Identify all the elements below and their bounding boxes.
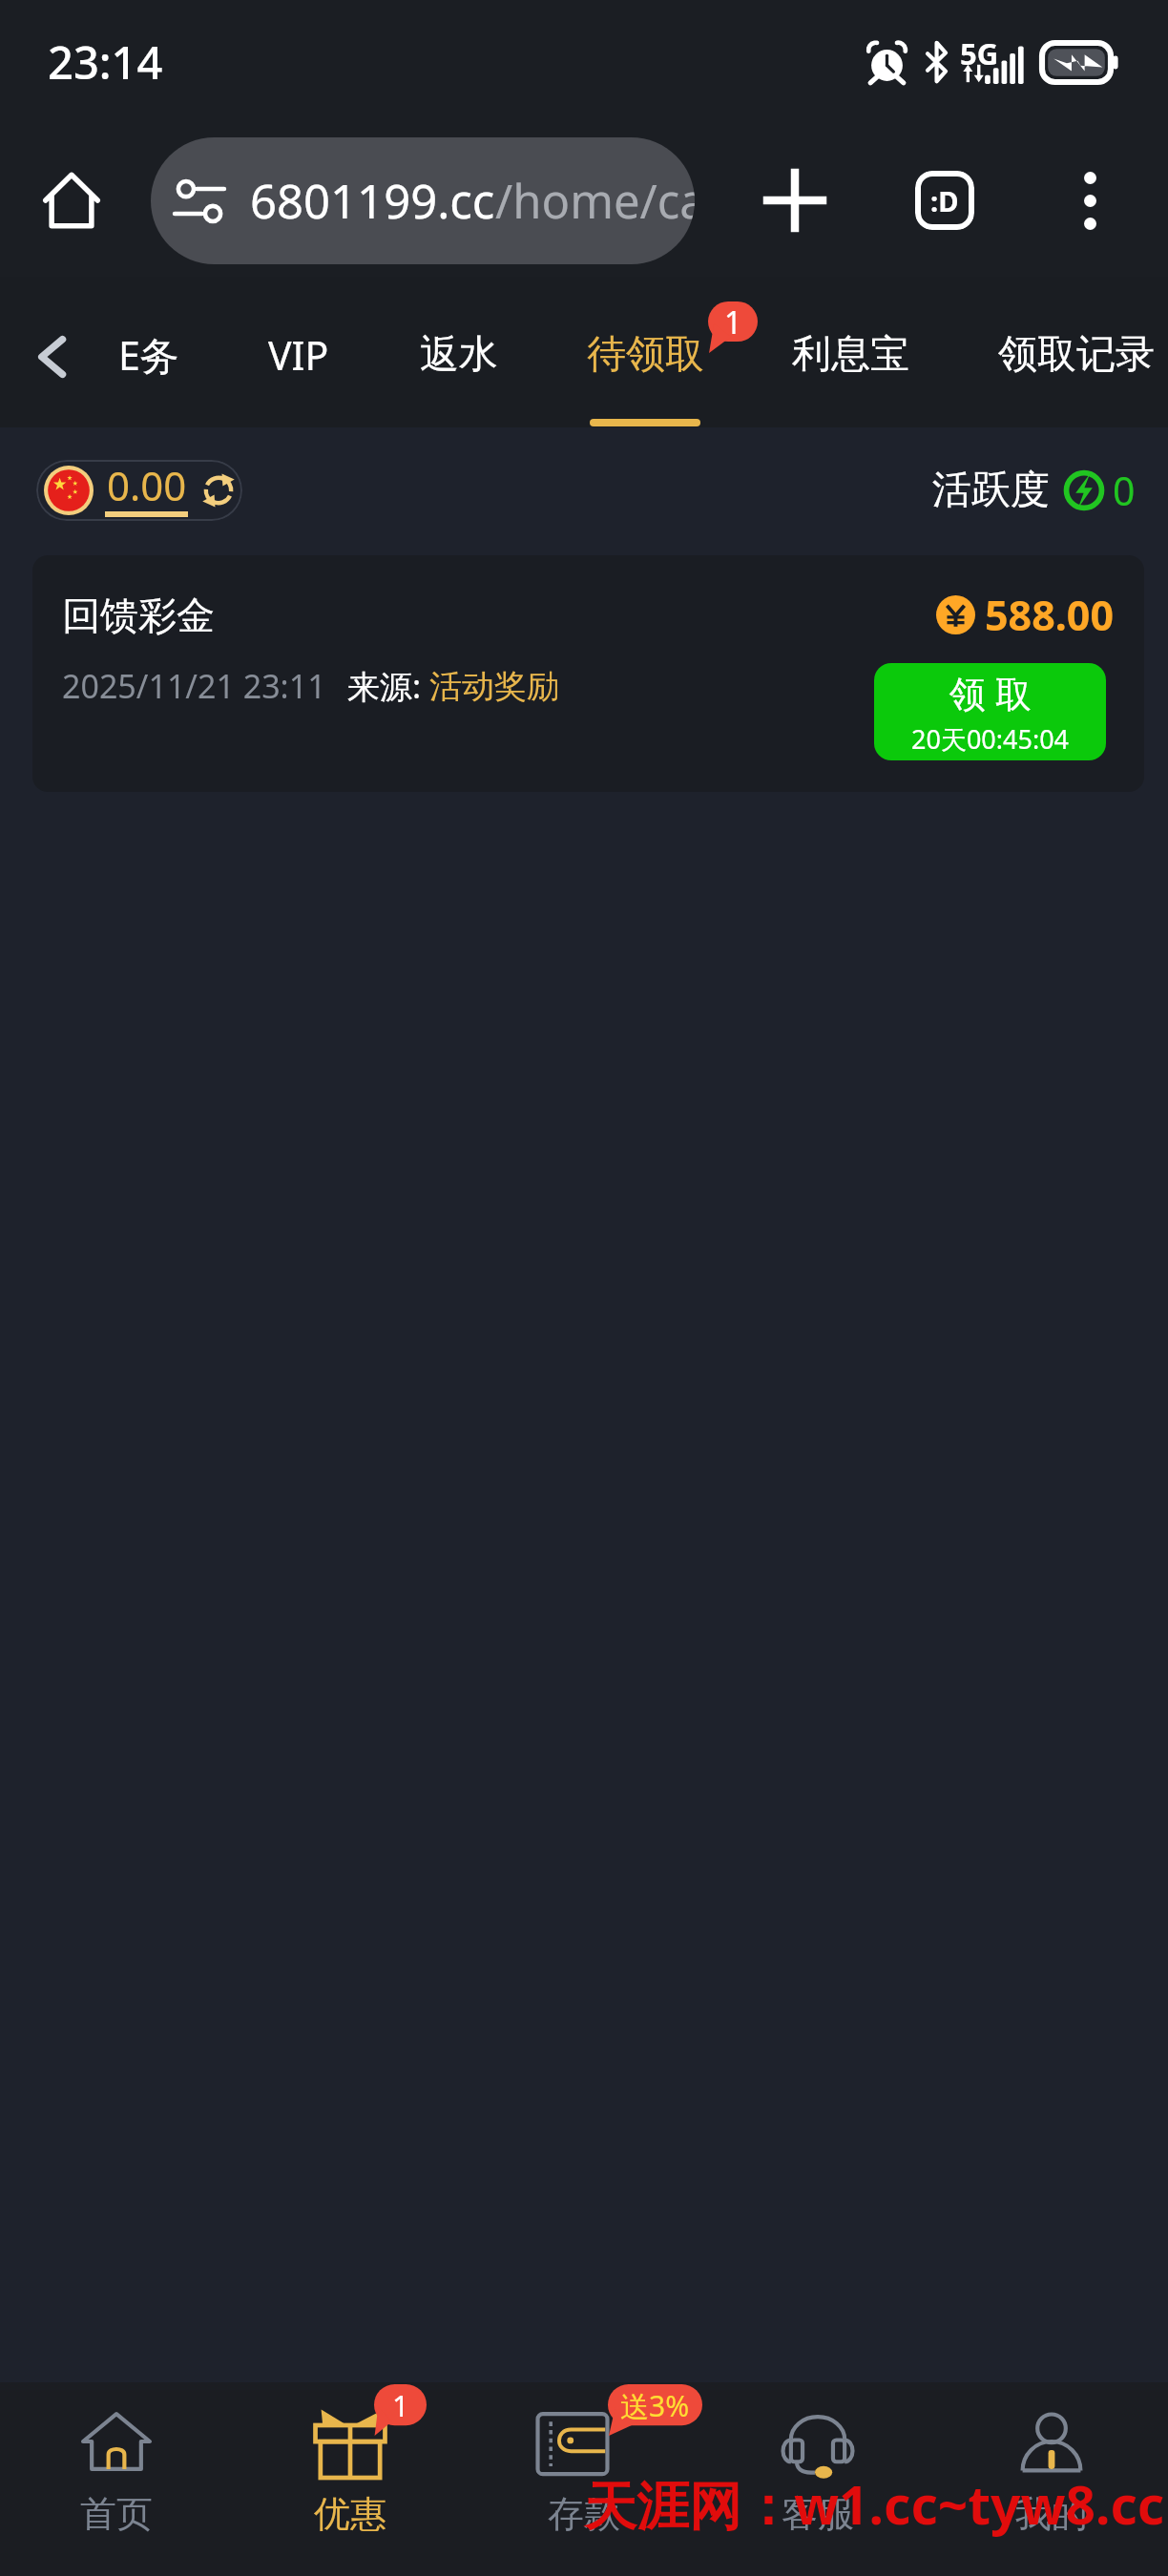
staticText: 6801199.cc <box>250 169 495 233</box>
staticText: 首页 <box>80 2491 153 2537</box>
button[interactable]: 6801199.cc <box>151 137 695 264</box>
button[interactable]: Home <box>0 2382 233 2576</box>
button[interactable]: 领 取 <box>874 663 1106 760</box>
staticText: :D <box>930 182 959 219</box>
button[interactable]: VIP <box>156 277 442 427</box>
staticText: 送3% <box>620 2386 690 2425</box>
button[interactable]: Back <box>10 316 93 398</box>
button[interactable]: Promotions <box>233 2382 467 2576</box>
button[interactable]: 利息宝 <box>707 277 993 427</box>
staticText: 1 <box>392 2385 409 2425</box>
staticText: 客服 <box>782 2491 854 2537</box>
staticText: 存款 <box>548 2491 620 2537</box>
button[interactable]: E务 <box>6 277 292 427</box>
staticText: 领 取 <box>949 668 1032 717</box>
staticText: 利息宝 <box>792 330 909 380</box>
button[interactable]: 待领取 <box>502 277 788 427</box>
button[interactable]: New tab <box>750 156 840 245</box>
staticText: 0 <box>1113 464 1136 517</box>
staticText: 5G <box>960 33 999 73</box>
button[interactable]: 回馈彩金 <box>32 555 1144 792</box>
button[interactable]: 领取记录 <box>933 277 1168 427</box>
button[interactable]: Profile <box>934 2382 1168 2576</box>
button[interactable]: Deposit <box>467 2382 700 2576</box>
staticText: VIP <box>268 328 329 382</box>
button[interactable]: Tabs <box>900 156 990 245</box>
button[interactable]: More options <box>1045 156 1135 245</box>
button[interactable]: 0.00 <box>36 460 242 521</box>
staticText: 20天00:45:04 <box>911 721 1070 757</box>
button[interactable]: Support <box>700 2382 934 2576</box>
staticText: 返水 <box>420 330 498 380</box>
staticText: 2025/11/21 23:11 <box>62 664 326 708</box>
staticText: 待领取 <box>587 330 704 380</box>
staticText: 活动奖励 <box>429 666 559 707</box>
staticText: 来源: <box>347 664 429 708</box>
staticText: E务 <box>118 328 179 382</box>
staticText: 588.00 <box>985 587 1115 643</box>
staticText: 0.00 <box>107 460 187 512</box>
staticText: 23:14 <box>48 31 163 93</box>
staticText: 天涯网：w1.cc~tyw8.cc <box>584 2468 1165 2540</box>
staticText: 领取记录 <box>998 330 1155 380</box>
staticText: 优惠 <box>314 2491 386 2537</box>
button[interactable]: 返水 <box>316 277 602 427</box>
button[interactable]: Home <box>31 159 113 241</box>
staticText: 活跃度 <box>932 466 1050 515</box>
staticText: 我的 <box>1015 2491 1088 2537</box>
staticText: 回馈彩金 <box>62 592 215 639</box>
staticText: 1 <box>724 301 742 343</box>
staticText: /home/ca <box>495 169 695 233</box>
